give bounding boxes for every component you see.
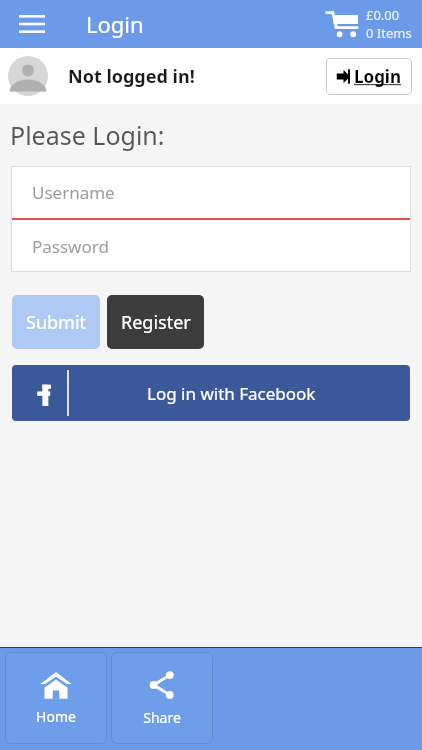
button[interactable]: Submit <box>12 295 100 349</box>
staticText: £0.00 <box>366 6 400 24</box>
staticText: Home <box>36 707 76 726</box>
staticText: Share <box>143 708 181 727</box>
button[interactable]: Register <box>107 295 204 349</box>
staticText: Username <box>32 181 115 204</box>
button[interactable]: Password <box>11 220 411 272</box>
button[interactable]: Share <box>111 652 213 744</box>
button[interactable]: Log in with Facebook <box>12 365 410 421</box>
staticText: Password <box>32 235 109 258</box>
staticText: 0 Items <box>366 24 412 42</box>
button[interactable]: Open navigation menu <box>10 2 54 46</box>
button[interactable]: Login <box>326 58 412 95</box>
staticText: Log in with Facebook <box>147 382 316 405</box>
staticText: Submit <box>26 310 87 335</box>
button[interactable]: Home <box>5 652 107 744</box>
staticText: Please Login: <box>10 118 165 152</box>
staticText: Register <box>121 310 191 335</box>
staticText: Not logged in! <box>68 64 195 89</box>
button[interactable]: Shopping cart, 0 items <box>322 6 416 42</box>
button[interactable]: Username <box>11 166 411 218</box>
staticText: Login <box>354 65 402 88</box>
staticText: Login <box>86 9 144 39</box>
